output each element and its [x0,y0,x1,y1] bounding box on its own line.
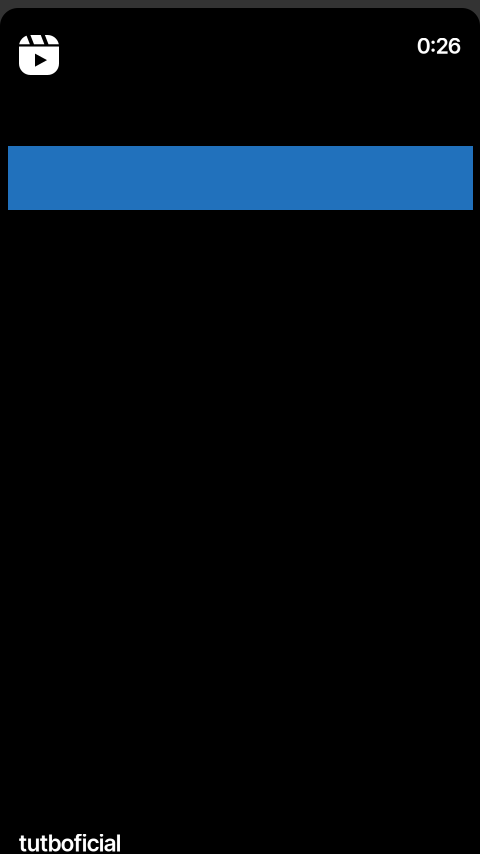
staticText: 0:26 [417,33,461,59]
button[interactable]: tutboficial [19,830,121,854]
staticText: tutboficial [19,830,121,854]
button[interactable]: Reels [19,35,59,75]
